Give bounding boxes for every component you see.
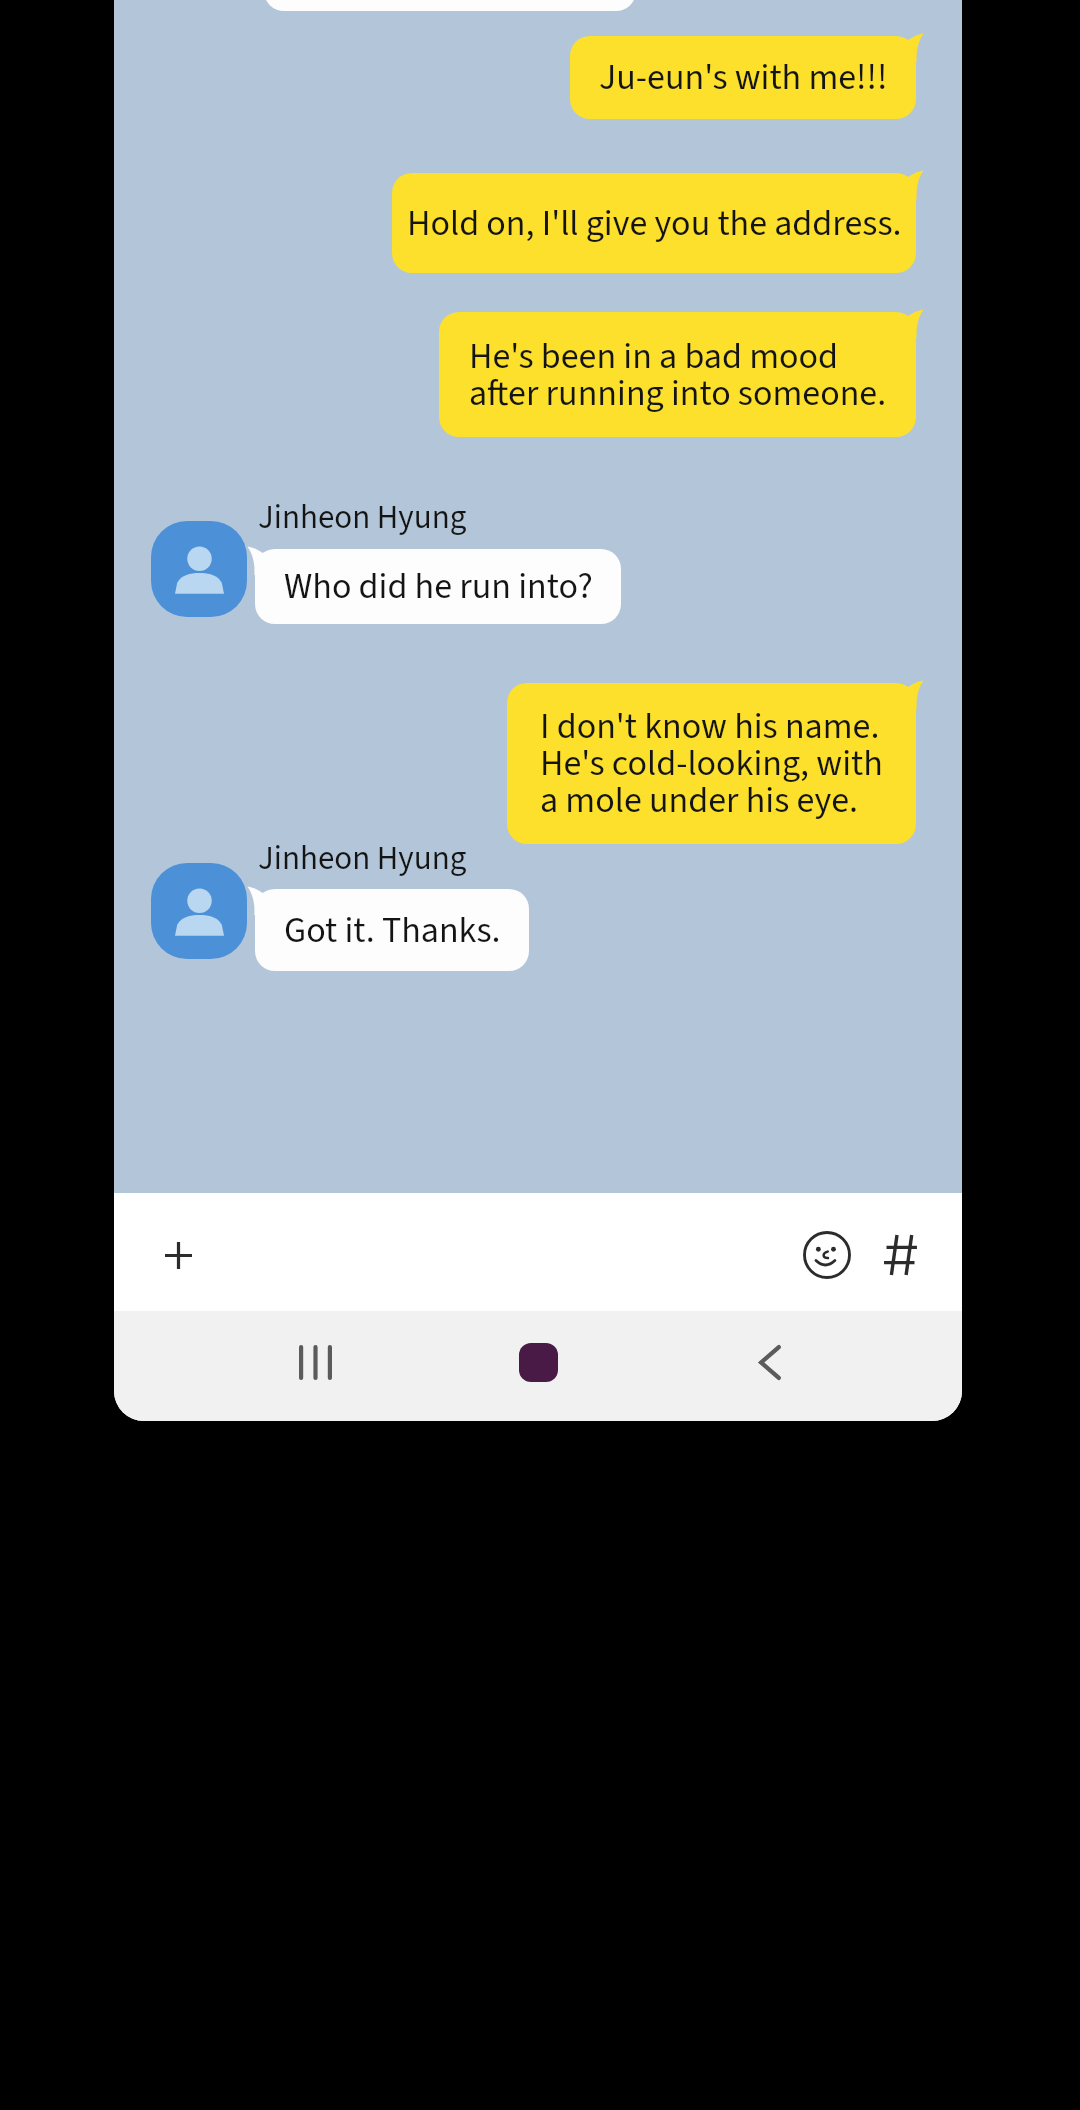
staticText: Who did he run into?	[284, 561, 593, 612]
button[interactable]: Got it. Thanks.	[255, 889, 529, 971]
button[interactable]: Hold on, I'll give you the address.	[392, 173, 916, 273]
button[interactable]: I don't know his name. He's cold-looking…	[507, 683, 916, 844]
staticText: I don't know his name. He's cold-looking…	[540, 701, 883, 826]
button[interactable]	[264, 0, 636, 11]
staticText: Hold on, I'll give you the address.	[407, 198, 902, 249]
staticText: Ju-eun's with me!!!	[599, 52, 888, 103]
button[interactable]: Who did he run into?	[255, 549, 621, 624]
button[interactable]: Recent apps	[271, 1318, 359, 1406]
button[interactable]: Add attachment	[134, 1211, 222, 1299]
button[interactable]: He's been in a bad mood after running in…	[439, 312, 916, 437]
button[interactable]: Profile picture	[151, 521, 247, 617]
staticText: Got it. Thanks.	[284, 905, 501, 956]
button[interactable]: Ju-eun's with me!!!	[570, 36, 916, 119]
button[interactable]: Hashtag	[856, 1211, 944, 1299]
button[interactable]: Jinheon Hyung	[258, 494, 467, 541]
staticText: He's been in a bad mood after running in…	[469, 331, 887, 419]
button[interactable]: Emoji	[783, 1211, 871, 1299]
button[interactable]: Profile picture	[151, 863, 247, 959]
button[interactable]: Jinheon Hyung	[258, 835, 467, 882]
button[interactable]: Home	[494, 1318, 582, 1406]
button[interactable]: Back	[726, 1318, 814, 1406]
